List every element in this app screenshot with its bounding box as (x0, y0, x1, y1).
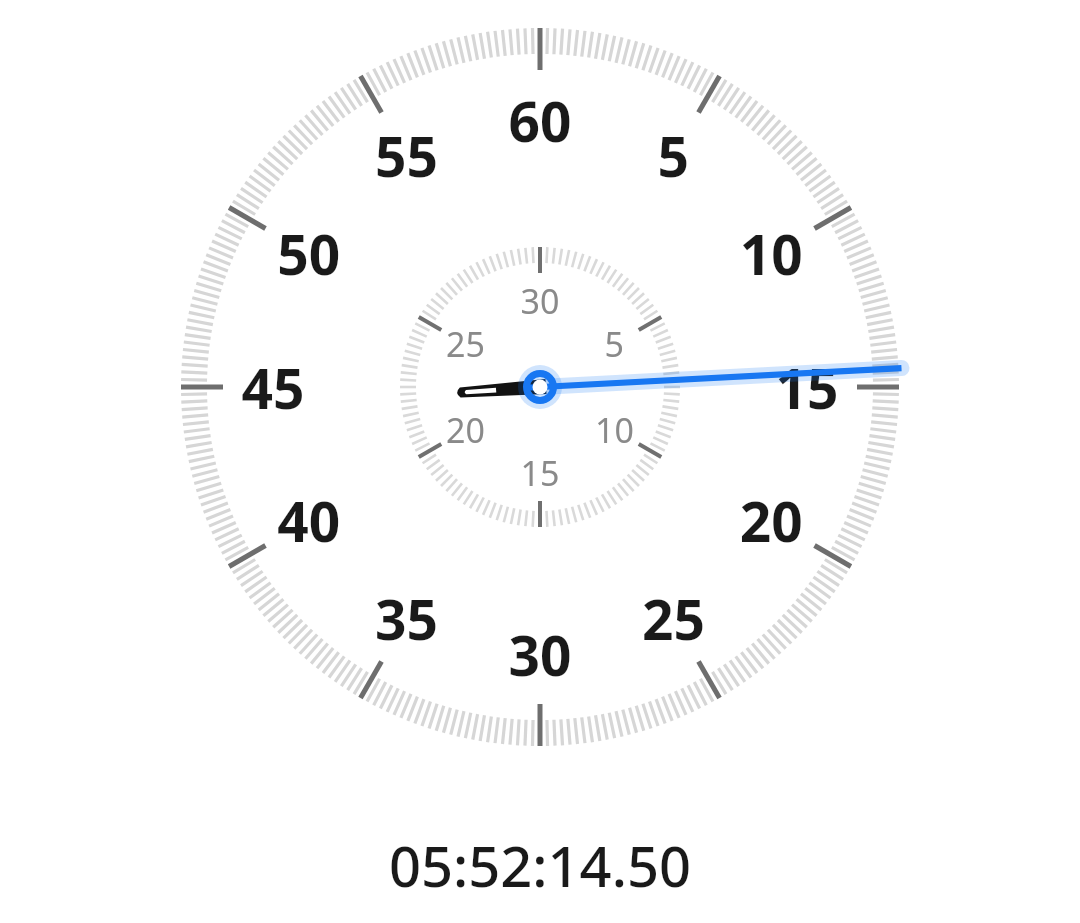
other: Stopwatch dial (0, 0, 1080, 923)
button[interactable]: Stopwatch dial (0, 0, 1080, 923)
